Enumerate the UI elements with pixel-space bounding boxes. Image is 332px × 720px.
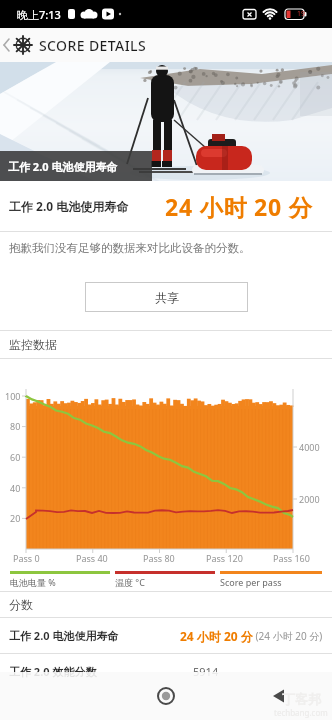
staticText: Pass 0 — [13, 552, 40, 564]
staticText: 丁客邦 — [282, 691, 321, 707]
staticText: 20 — [10, 512, 21, 524]
staticText: 24 小时 20 分 — [165, 191, 313, 222]
staticText: 工作 2.0 电池使用寿命 — [9, 628, 119, 643]
staticText: 24 小时 20 分 — [180, 628, 253, 644]
staticText: Pass 120 — [206, 552, 243, 564]
button[interactable] — [268, 685, 290, 707]
staticText: 80 — [10, 420, 21, 432]
staticText: techbang.com — [274, 707, 328, 718]
staticText: Score per pass — [220, 576, 282, 588]
staticText: 监控数据 — [9, 337, 57, 352]
staticText: 分数 — [9, 597, 33, 612]
staticText: 共享 — [155, 290, 179, 305]
staticText: 电池电量 % — [10, 576, 56, 588]
staticText: Pass 160 — [273, 552, 310, 564]
staticText: 工作 2.0 电池使用寿命 — [9, 198, 129, 214]
staticText: 100 — [5, 390, 21, 402]
staticText: 工作 2.0 电池使用寿命 — [8, 159, 118, 174]
staticText: 4000 — [299, 441, 320, 453]
staticText: 5914 — [193, 664, 219, 679]
staticText: 19 — [297, 9, 306, 19]
staticText: (24 小时 20 分) — [253, 629, 323, 643]
staticText: 40 — [10, 482, 21, 494]
staticText: 抱歉我们没有足够的数据来对比此设备的分数。 — [9, 241, 251, 255]
staticText: Pass 80 — [143, 552, 175, 564]
staticText: 工作 2.0 效能分数 — [9, 664, 97, 679]
staticText: Pass 40 — [76, 552, 108, 564]
staticText: 60 — [10, 451, 21, 463]
button[interactable]: 共享 — [85, 282, 248, 312]
staticText: 温度 °C — [115, 576, 145, 588]
staticText: 晚上7:13 — [17, 7, 61, 22]
staticText: 2000 — [299, 493, 320, 505]
button[interactable]: 工作 2.0 电池使用寿命 — [0, 151, 152, 181]
staticText: SCORE DETAILS — [39, 36, 146, 55]
button[interactable] — [155, 685, 177, 707]
